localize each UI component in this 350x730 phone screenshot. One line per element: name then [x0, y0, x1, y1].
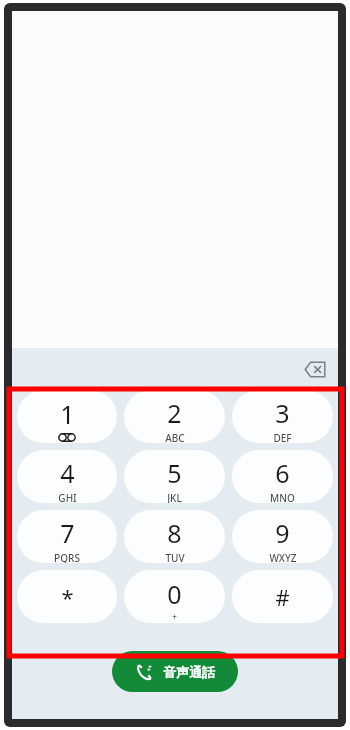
- staticText: TUV: [165, 551, 185, 563]
- staticText: 5: [167, 456, 182, 490]
- staticText: JKL: [167, 491, 182, 503]
- staticText: 0: [167, 577, 182, 611]
- staticText: 2: [167, 396, 182, 430]
- staticText: 音声通話: [163, 664, 215, 680]
- staticText: 9: [275, 516, 290, 550]
- staticText: 1: [60, 397, 75, 431]
- button[interactable]: 7: [17, 510, 117, 563]
- button[interactable]: 8: [124, 510, 225, 563]
- button[interactable]: 1: [17, 390, 117, 443]
- staticText: 8: [167, 516, 182, 550]
- staticText: PQRS: [54, 551, 80, 563]
- button[interactable]: 5: [124, 450, 225, 503]
- staticText: 6: [275, 456, 290, 490]
- button[interactable]: 9: [232, 510, 333, 563]
- button[interactable]: *: [17, 570, 117, 623]
- staticText: 4: [60, 456, 75, 490]
- staticText: MNO: [270, 491, 295, 503]
- staticText: #: [275, 582, 290, 612]
- button[interactable]: 4: [17, 450, 117, 503]
- staticText: DEF: [273, 431, 292, 443]
- staticText: +: [172, 611, 177, 622]
- button[interactable]: 2: [124, 390, 225, 443]
- button[interactable]: #: [232, 570, 333, 623]
- staticText: 3: [275, 396, 290, 430]
- staticText: GHI: [58, 491, 77, 503]
- staticText: WXYZ: [269, 551, 297, 563]
- button[interactable]: Backspace: [298, 352, 332, 386]
- staticText: ABC: [165, 431, 185, 443]
- button[interactable]: 6: [232, 450, 333, 503]
- button[interactable]: 音声通話: [112, 651, 238, 692]
- button[interactable]: 3: [232, 390, 333, 443]
- button[interactable]: 0: [124, 570, 225, 623]
- staticText: *: [61, 582, 74, 612]
- staticText: 7: [60, 516, 75, 550]
